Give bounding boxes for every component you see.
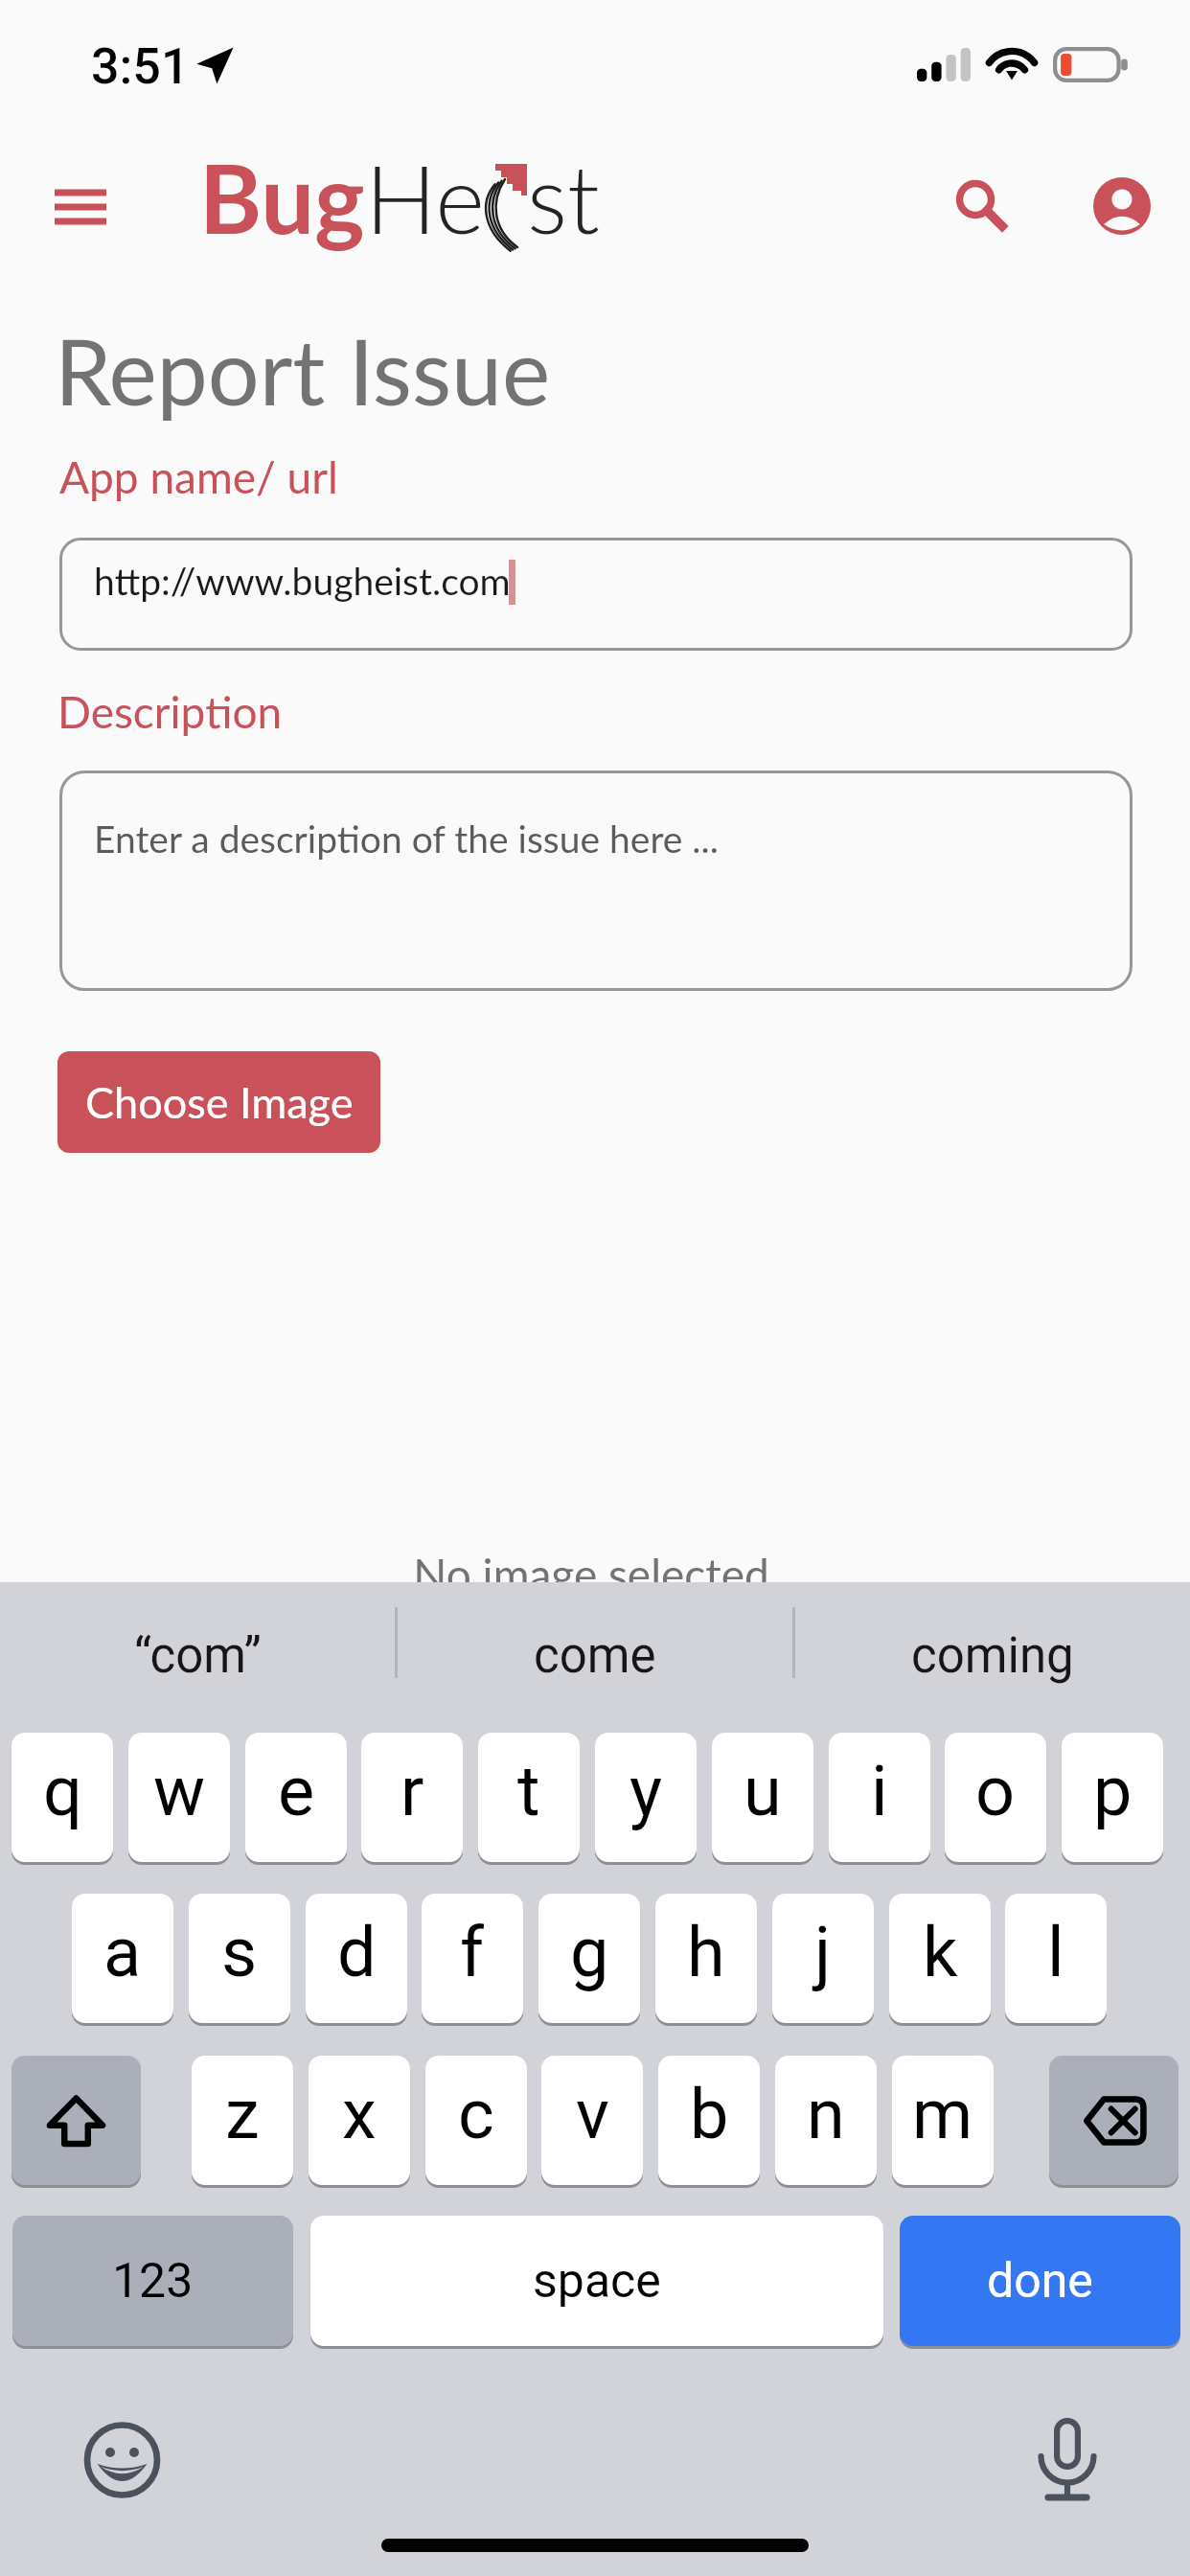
staticText: come	[534, 1627, 656, 1685]
button[interactable]: Emoji keyboard	[80, 2419, 165, 2503]
staticText: c	[458, 2074, 494, 2154]
button[interactable]: o	[945, 1733, 1046, 1862]
staticText: m	[912, 2074, 973, 2154]
button[interactable]: n	[775, 2056, 877, 2185]
button[interactable]: i	[829, 1733, 930, 1862]
staticText: i	[871, 1751, 888, 1831]
staticText: done	[987, 2253, 1093, 2310]
button[interactable]: s	[189, 1894, 290, 2023]
staticText: b	[690, 2074, 729, 2154]
button[interactable]: Account	[1087, 172, 1156, 241]
staticText: Description	[57, 685, 283, 738]
staticText: z	[225, 2074, 260, 2154]
staticText: f	[460, 1912, 485, 1992]
staticText: o	[975, 1751, 1016, 1831]
button[interactable]: Enter a description of the issue here ..…	[59, 770, 1133, 991]
button[interactable]: “com”	[0, 1582, 395, 1703]
staticText: y	[629, 1751, 663, 1831]
staticText: Choose Image	[85, 1076, 354, 1128]
button[interactable]: c	[425, 2056, 527, 2185]
button[interactable]: y	[595, 1733, 697, 1862]
staticText: s	[221, 1912, 258, 1992]
button[interactable]: e	[245, 1733, 347, 1862]
staticText: No image selected	[413, 1548, 769, 1600]
staticText: e	[278, 1751, 315, 1831]
button[interactable]: z	[192, 2056, 293, 2185]
button[interactable]: h	[655, 1894, 757, 2023]
button[interactable]: x	[309, 2056, 410, 2185]
staticText: space	[533, 2253, 661, 2310]
button[interactable]: Shift	[11, 2056, 141, 2185]
button[interactable]: u	[712, 1733, 813, 1862]
button[interactable]: j	[772, 1894, 874, 2023]
staticText: Enter a description of the issue here ..…	[94, 816, 719, 862]
button[interactable]: v	[541, 2056, 643, 2185]
button[interactable]: a	[72, 1894, 173, 2023]
staticText: j	[814, 1912, 832, 1992]
staticText: n	[807, 2074, 845, 2154]
staticText: k	[923, 1912, 958, 1992]
button[interactable]: Backspace	[1049, 2056, 1179, 2185]
staticText: h	[687, 1912, 725, 1992]
staticText: a	[103, 1912, 142, 1992]
button[interactable]: space	[310, 2216, 883, 2346]
staticText: t	[517, 1751, 540, 1831]
button[interactable]: r	[361, 1733, 463, 1862]
button[interactable]: Dictation	[1038, 2414, 1097, 2504]
staticText: p	[1093, 1751, 1133, 1831]
button[interactable]: Menu	[37, 172, 124, 241]
staticText: r	[400, 1751, 424, 1831]
staticText: App name/ url	[59, 450, 338, 503]
button[interactable]: q	[11, 1733, 113, 1862]
staticText: st	[527, 140, 600, 254]
button[interactable]: f	[422, 1894, 523, 2023]
staticText: 3:51	[91, 37, 190, 96]
button[interactable]: k	[889, 1894, 991, 2023]
button[interactable]: t	[478, 1733, 580, 1862]
button[interactable]: d	[306, 1894, 407, 2023]
staticText: Bug	[199, 140, 365, 254]
button[interactable]: Choose Image	[57, 1051, 380, 1153]
staticText: http://www.bugheist.com	[94, 559, 511, 604]
button[interactable]: w	[128, 1733, 230, 1862]
button[interactable]: http://www.bugheist.com	[59, 538, 1133, 651]
staticText: q	[43, 1751, 82, 1831]
staticText: Report Issue	[55, 315, 551, 425]
staticText: g	[570, 1912, 609, 1992]
button[interactable]: Numbers	[12, 2216, 293, 2346]
staticText: u	[744, 1751, 782, 1831]
staticText: v	[576, 2074, 609, 2154]
button[interactable]: coming	[795, 1582, 1190, 1703]
button[interactable]: m	[892, 2056, 994, 2185]
staticText: 123	[112, 2253, 194, 2310]
button[interactable]: p	[1062, 1733, 1163, 1862]
staticText: “com”	[134, 1627, 262, 1685]
staticText: l	[1047, 1912, 1064, 1992]
staticText: x	[342, 2074, 377, 2154]
staticText: coming	[911, 1627, 1074, 1685]
button[interactable]: l	[1005, 1894, 1107, 2023]
button[interactable]: b	[658, 2056, 760, 2185]
staticText: w	[153, 1751, 206, 1831]
staticText: He	[365, 140, 485, 254]
button[interactable]: done	[900, 2216, 1180, 2346]
button[interactable]: come	[398, 1582, 792, 1703]
button[interactable]: g	[538, 1894, 640, 2023]
staticText: d	[337, 1912, 377, 1992]
button[interactable]: Search	[934, 159, 1015, 243]
